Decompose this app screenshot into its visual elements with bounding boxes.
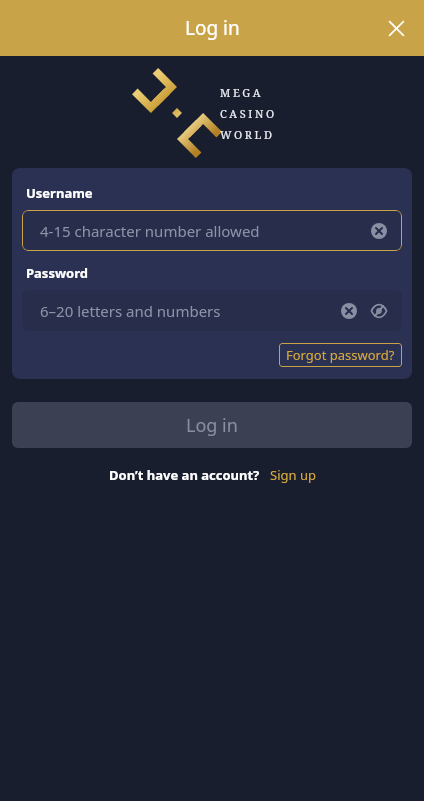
button[interactable]: Sign up	[270, 466, 316, 484]
staticText: Log in	[185, 15, 240, 41]
button[interactable]: Clear	[338, 300, 360, 322]
button[interactable]: Close	[374, 6, 418, 50]
staticText: Forgot password?	[286, 346, 395, 364]
button[interactable]: Forgot password?	[279, 343, 402, 367]
button[interactable]: Log in	[12, 402, 412, 448]
staticText: WORLD	[220, 127, 275, 142]
staticText: Don’t have an account?	[109, 466, 260, 484]
staticText: Log in	[186, 413, 238, 438]
button[interactable]: 4-15 character number allowed	[22, 210, 402, 251]
staticText: 6–20 letters and numbers	[40, 301, 338, 321]
staticText: CASINO	[220, 106, 277, 121]
staticText: Sign up	[270, 466, 316, 484]
button[interactable]: Show password	[368, 300, 390, 322]
staticText: Password	[26, 264, 88, 282]
button[interactable]: Clear	[368, 220, 390, 242]
staticText: Username	[26, 184, 93, 202]
button[interactable]: 6–20 letters and numbers	[22, 290, 402, 331]
staticText: 4-15 character number allowed	[40, 221, 368, 241]
staticText: MEGA	[220, 85, 264, 100]
